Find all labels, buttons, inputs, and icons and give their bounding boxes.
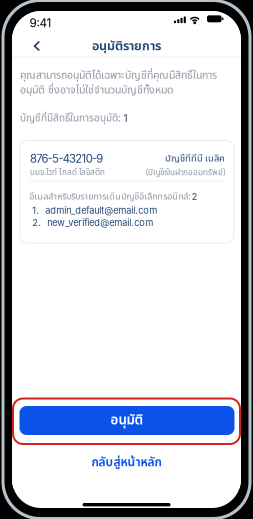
staticText: 9:41: [29, 16, 51, 30]
staticText: คุณสามารถอนุมัติได้เฉพาะบัญชีที่คุณมีสิท…: [20, 67, 217, 98]
staticText: (บัญชีเงินฝากออมทรัพย์): [146, 167, 225, 179]
staticText: 876-5-43210-9: [30, 152, 103, 165]
staticText: บัญชีทีทีบี เบสิค: [165, 151, 225, 166]
staticText: อีเมลสำหรับรับรายการเดินบัญชีอิเล็กทรอนิ…: [29, 190, 190, 204]
staticText: บัญชีที่มีสิทธิ์ในการอนุมัติ:: [20, 111, 121, 126]
staticText: 1. admin_default@email.com: [32, 205, 157, 216]
staticText: กลับสู่หน้าหลัก: [91, 453, 161, 471]
staticText: 2. new_verified@email.com: [32, 217, 153, 228]
staticText: อนุมัติรายการ: [92, 37, 161, 56]
staticText: 2: [192, 191, 198, 202]
button[interactable]: อนุมัติ: [19, 406, 234, 435]
button[interactable]: Back: [26, 35, 48, 57]
staticText: อนุมัติ: [110, 410, 143, 430]
staticText: บมจ.ไวท์ โกลด์ โลจิสติก: [30, 166, 105, 179]
staticText: 1: [123, 112, 127, 125]
button[interactable]: กลับสู่หน้าหลัก: [66, 451, 186, 473]
